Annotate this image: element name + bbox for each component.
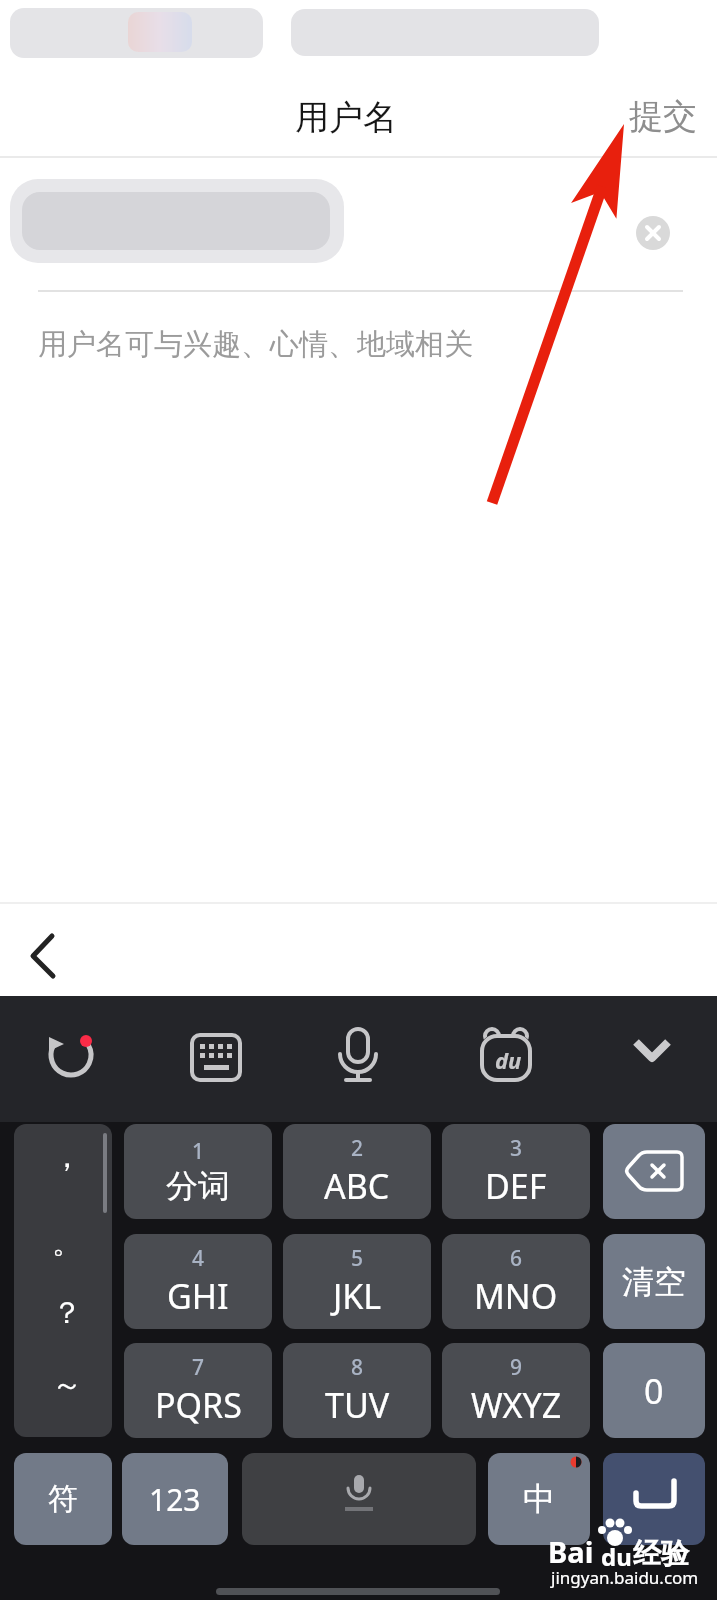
staticText: 0 [644,1368,664,1414]
button[interactable]: 6 [442,1234,590,1329]
staticText: 。 [52,1224,82,1262]
button[interactable]: 7 [124,1343,272,1438]
button[interactable]: 3 [442,1124,590,1219]
button[interactable]: 123 [122,1453,228,1545]
button[interactable]: 5 [283,1234,431,1329]
staticText: 用户名可与兴趣、心情、地域相关 [38,326,473,363]
button[interactable]: 中 [488,1453,590,1545]
staticText: DEF [485,1163,547,1209]
staticText: WXYZ [471,1382,562,1428]
staticText: 6 [510,1244,523,1273]
button[interactable] [636,216,670,250]
button[interactable] [603,1453,705,1545]
button[interactable] [35,1021,107,1093]
button[interactable] [603,1124,705,1219]
staticText: ～ [52,1366,82,1404]
button[interactable]: 8 [283,1343,431,1438]
staticText: 分词 [166,1166,230,1206]
staticText: 3 [510,1134,523,1163]
staticText: 4 [192,1244,205,1273]
button[interactable] [322,1021,394,1093]
staticText: 7 [192,1353,205,1382]
button[interactable]: 9 [442,1343,590,1438]
staticText: 9 [510,1353,523,1382]
staticText: 经验 [633,1536,689,1571]
button[interactable]: 提交 [618,90,708,142]
button[interactable]: du [470,1021,542,1093]
staticText: TUV [325,1382,390,1428]
staticText: 1 [192,1137,205,1166]
staticText: MNO [474,1273,558,1319]
button[interactable]: 0 [603,1343,705,1438]
button[interactable] [14,1124,112,1437]
button[interactable] [618,1016,686,1084]
button[interactable]: 1 [124,1124,272,1219]
staticText: du [495,1045,522,1075]
button[interactable] [242,1453,476,1545]
staticText: 123 [149,1479,201,1520]
staticText: Bai [548,1532,594,1571]
staticText: du [601,1540,632,1573]
staticText: PQRS [155,1382,242,1428]
staticText: 2 [351,1134,364,1163]
staticText: 5 [351,1244,364,1273]
staticText: ABC [324,1163,390,1209]
staticText: 中 [523,1479,555,1519]
button[interactable] [180,1021,252,1093]
staticText: ， [52,1138,82,1176]
staticText: JKL [333,1273,382,1319]
staticText: 清空 [622,1262,686,1302]
staticText: 用户名 [295,96,397,139]
button[interactable]: 2 [283,1124,431,1219]
staticText: jingyan.baidu.com [551,1566,699,1589]
staticText: 符 [48,1480,78,1518]
button[interactable]: 清空 [603,1234,705,1329]
staticText: 提交 [629,95,697,138]
staticText: GHI [167,1273,229,1319]
staticText: 8 [351,1353,364,1382]
button[interactable] [10,915,80,990]
staticText: ？ [52,1294,82,1332]
button[interactable]: 符 [14,1453,112,1545]
button[interactable]: 4 [124,1234,272,1329]
